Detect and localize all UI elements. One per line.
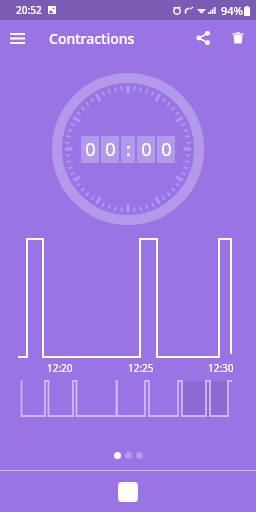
staticText: 12:25 bbox=[128, 361, 154, 375]
button[interactable]: Delete bbox=[220, 20, 256, 56]
staticText: Contractions bbox=[49, 29, 135, 48]
button[interactable]: Share bbox=[186, 21, 220, 55]
button[interactable]: Stop bbox=[118, 482, 138, 502]
staticText: 94% bbox=[221, 3, 243, 18]
staticText: 0 bbox=[161, 137, 172, 162]
staticText: : bbox=[126, 137, 131, 162]
staticText: 0 bbox=[105, 137, 116, 162]
staticText: 12:30 bbox=[208, 361, 234, 375]
button[interactable]: Menu bbox=[5, 26, 29, 50]
staticText: 0 bbox=[85, 137, 96, 162]
button[interactable] bbox=[0, 376, 256, 422]
staticText: 20:52 bbox=[16, 3, 42, 17]
staticText: 0 bbox=[141, 137, 152, 162]
staticText: 12:20 bbox=[47, 361, 73, 375]
